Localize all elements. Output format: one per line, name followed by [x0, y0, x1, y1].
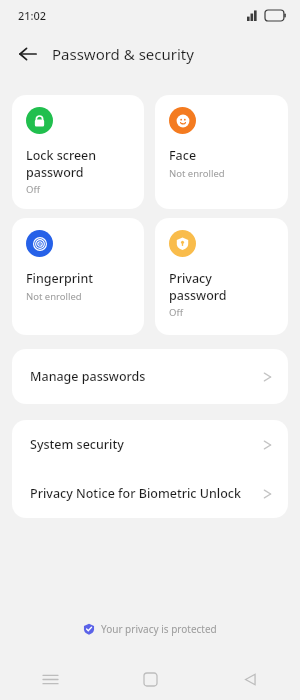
staticText: Off	[169, 306, 183, 319]
button[interactable]: Manage passwords	[12, 349, 288, 404]
button[interactable]: Fingerprint	[12, 218, 144, 335]
button[interactable]: System security	[12, 420, 288, 469]
staticText: Not enrolled	[26, 290, 82, 303]
staticText: Off	[26, 183, 40, 196]
button[interactable]: Privacy password	[155, 218, 288, 335]
staticText: Your privacy is protected	[101, 622, 217, 636]
staticText: Not enrolled	[169, 167, 225, 180]
staticText: Privacy Notice for Biometric Unlock	[30, 485, 263, 502]
button[interactable]: Recent apps	[0, 658, 100, 700]
button[interactable]: Lock screen password	[12, 95, 144, 209]
staticText: Face	[169, 147, 197, 164]
button[interactable]: Home	[100, 658, 200, 700]
staticText: 21:02	[18, 8, 47, 23]
button[interactable]: Back	[8, 34, 48, 74]
staticText: Privacy password	[169, 270, 227, 303]
staticText: Lock screen password	[26, 147, 97, 180]
button[interactable]: Privacy Notice for Biometric Unlock	[12, 469, 288, 518]
button[interactable]: Back	[200, 658, 300, 700]
staticText: Fingerprint	[26, 270, 94, 287]
button[interactable]: Face	[155, 95, 288, 209]
staticText: System security	[30, 436, 263, 453]
staticText: Password & security	[52, 44, 194, 64]
staticText: Manage passwords	[30, 368, 263, 385]
